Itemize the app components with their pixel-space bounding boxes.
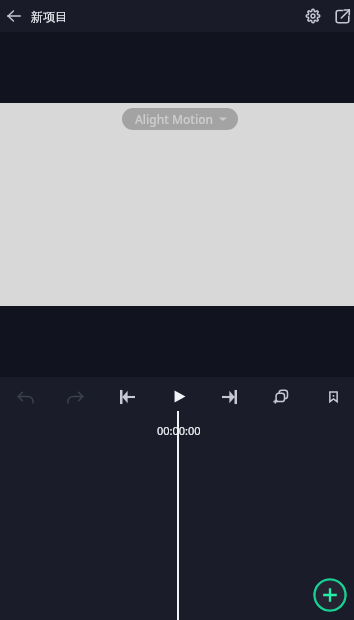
staticText: Alight Motion — [135, 111, 214, 127]
button[interactable]: Redo — [55, 377, 95, 416]
button[interactable]: Undo — [5, 377, 45, 416]
button[interactable]: Bookmark — [313, 377, 353, 416]
button[interactable]: Skip to end — [210, 377, 250, 416]
button[interactable]: Back — [0, 0, 27, 32]
button[interactable]: Add — [313, 578, 347, 612]
staticText: 新项目 — [31, 9, 67, 24]
staticText: 00:00:00 — [157, 423, 201, 438]
button[interactable]: Settings — [295, 0, 331, 32]
button[interactable]: Skip to start — [107, 377, 147, 416]
button[interactable]: Export — [330, 0, 354, 32]
button[interactable]: Duplicate — [261, 377, 301, 416]
button[interactable]: Play — [159, 377, 199, 416]
